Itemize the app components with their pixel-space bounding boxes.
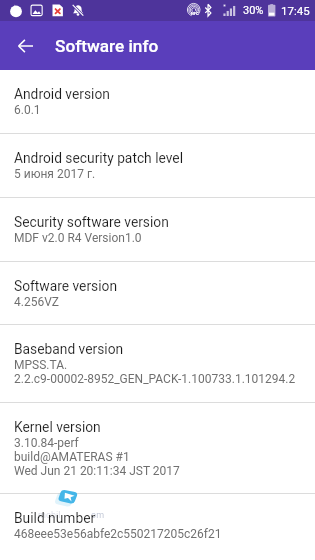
staticText: MPSS.TA. — [14, 358, 68, 372]
button[interactable]: Kernel version — [0, 403, 315, 493]
staticText: Wed Jun 21 20:11:34 JST 2017 — [14, 464, 180, 478]
staticText: 6.0.1 — [14, 103, 41, 117]
button[interactable]: Baseband version — [0, 325, 315, 402]
button[interactable]: Security software version — [0, 198, 315, 261]
button[interactable]: Back — [7, 28, 43, 64]
staticText: MDF v2.0 R4 Version1.0 — [14, 231, 142, 245]
button[interactable]: Build number — [0, 494, 315, 560]
staticText: mobil — [38, 510, 61, 521]
staticText: 2.2.c9-00002-8952_GEN_PACK-1.100733.1.10… — [14, 372, 296, 386]
staticText: 468eee53e56abfe2c550217205c26f21 — [14, 527, 222, 541]
staticText: Software version — [14, 278, 118, 294]
staticText: 17:45 — [281, 4, 310, 17]
staticText: Kernel version — [14, 419, 101, 435]
button[interactable]: Android security patch level — [0, 134, 315, 197]
staticText: 3.10.84-perf — [14, 436, 79, 450]
staticText: 4.256VZ — [14, 295, 59, 309]
staticText: Baseband version — [14, 341, 124, 357]
staticText: Android version — [14, 86, 110, 102]
staticText: build@AMATERAS #1 — [14, 450, 130, 464]
staticText: Security software version — [14, 214, 169, 230]
staticText: Android security patch level — [14, 150, 183, 166]
staticText: Software info — [55, 36, 159, 56]
staticText: 5 июня 2017 г. — [14, 167, 96, 181]
button[interactable]: Software version — [0, 262, 315, 324]
staticText: om — [91, 510, 105, 521]
staticText: Build number — [14, 510, 96, 526]
staticText: NFC — [191, 11, 199, 16]
staticText: 30% — [243, 4, 264, 17]
button[interactable]: Android version — [0, 70, 315, 133]
